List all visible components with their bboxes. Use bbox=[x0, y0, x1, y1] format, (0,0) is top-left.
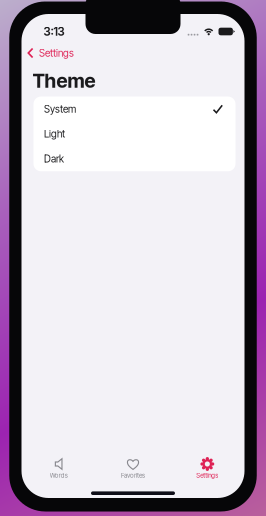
staticText: Settings bbox=[196, 472, 218, 479]
staticText: Dark bbox=[44, 153, 64, 165]
button[interactable]: Light bbox=[33, 121, 235, 146]
button[interactable]: Settings bbox=[170, 454, 244, 484]
staticText: System bbox=[44, 103, 76, 115]
staticText: Words bbox=[50, 472, 68, 479]
button[interactable]: Dark bbox=[33, 146, 235, 171]
staticText: Settings bbox=[39, 47, 74, 59]
staticText: Light bbox=[44, 128, 65, 140]
staticText: Favorites bbox=[121, 472, 145, 479]
staticText: 3:13 bbox=[43, 24, 64, 38]
button[interactable]: Words bbox=[21, 454, 96, 484]
button[interactable]: Settings bbox=[21, 46, 244, 60]
button[interactable]: System bbox=[33, 97, 235, 121]
button[interactable]: Favorites bbox=[96, 454, 170, 484]
staticText: Theme bbox=[32, 69, 95, 93]
